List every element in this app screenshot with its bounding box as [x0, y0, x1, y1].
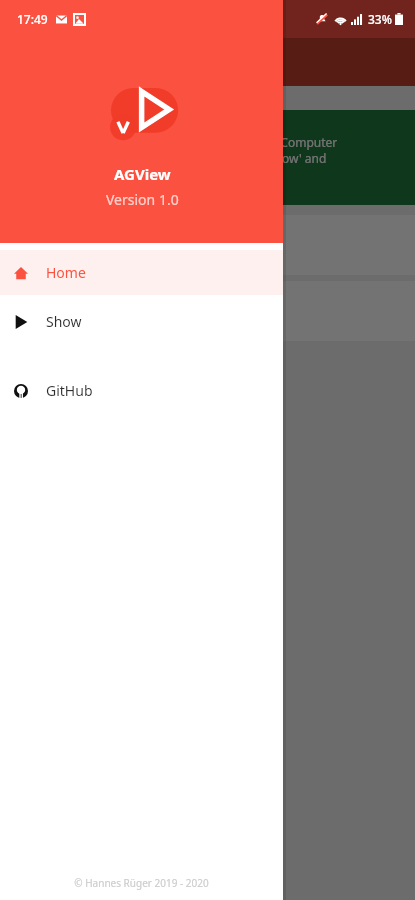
- staticText: Connect your Android Phone to a Computer…: [90, 134, 338, 182]
- button[interactable]: GitHub: [0, 368, 283, 413]
- button[interactable]: Home: [0, 250, 283, 295]
- staticText: 17:49: [17, 11, 48, 27]
- staticText: Show: [46, 312, 82, 331]
- staticText: Home: [46, 263, 86, 282]
- staticText: © Hannes Rüger 2019 - 2020: [0, 876, 283, 890]
- staticText: GitHub: [46, 381, 93, 400]
- button[interactable]: Show: [0, 299, 283, 344]
- staticText: 33%: [368, 11, 392, 27]
- staticText: Version 1.0: [106, 190, 179, 209]
- staticText: AGView: [114, 164, 171, 184]
